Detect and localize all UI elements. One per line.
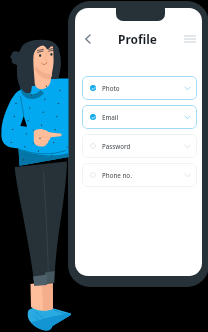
staticText: Phone no. [102,171,132,179]
button[interactable]: Photo [82,76,197,100]
button[interactable]: Phone no. [82,163,197,187]
staticText: Photo [102,84,120,92]
button[interactable]: Back [80,32,94,46]
button[interactable]: Email [82,105,197,129]
button[interactable]: Password [82,134,197,158]
staticText: Email [102,113,119,121]
staticText: Password [102,142,131,150]
button[interactable]: Menu [183,32,197,46]
staticText: Profile [118,31,158,47]
